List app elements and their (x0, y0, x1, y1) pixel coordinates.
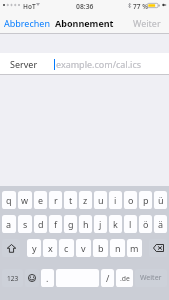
button[interactable]: Server (0, 53, 169, 75)
button[interactable]: Shift (2, 239, 20, 257)
button[interactable]: p (139, 191, 152, 209)
button[interactable]: Weiter (135, 269, 167, 287)
button[interactable]: s (18, 215, 32, 233)
button[interactable]: t (64, 191, 77, 209)
staticText: ü (158, 194, 164, 206)
staticText: j (99, 218, 102, 230)
button[interactable]: g (64, 215, 77, 233)
staticText: Abonnement (55, 17, 114, 29)
button[interactable]: ö (139, 215, 152, 233)
staticText: r (54, 194, 58, 206)
button[interactable]: . (41, 269, 54, 287)
button[interactable]: o (124, 191, 137, 209)
button[interactable]: x (43, 239, 57, 257)
staticText: g (68, 218, 74, 230)
staticText: / (106, 272, 110, 284)
staticText: l (129, 218, 132, 230)
button[interactable]: j (94, 215, 107, 233)
staticText: u (98, 194, 104, 206)
staticText: 123 (7, 274, 19, 283)
staticText: 77 % (133, 2, 148, 11)
staticText: v (81, 242, 86, 254)
button[interactable]: v (76, 239, 91, 257)
button[interactable]: r (49, 191, 62, 209)
staticText: .de (120, 274, 130, 283)
staticText: t (69, 194, 73, 206)
staticText: ö (143, 218, 149, 230)
staticText: a (6, 218, 12, 230)
button[interactable]: w (18, 191, 32, 209)
staticText: n (115, 242, 121, 254)
staticText: m (130, 242, 139, 254)
staticText: h (83, 218, 89, 230)
button[interactable]: y (27, 239, 41, 257)
button[interactable]: k (109, 215, 122, 233)
button[interactable]: q (2, 191, 16, 209)
staticText: b (98, 242, 104, 254)
button[interactable]: i (109, 191, 122, 209)
button[interactable]: b (93, 239, 108, 257)
button[interactable]: ü (154, 191, 167, 209)
button[interactable]: l (124, 215, 137, 233)
button[interactable]: Abbrechen (0, 13, 54, 33)
staticText: z (83, 194, 88, 206)
staticText: d (38, 218, 44, 230)
button[interactable]: e (34, 191, 47, 209)
staticText: p (143, 194, 149, 206)
staticText: k (113, 218, 118, 230)
button[interactable]: d (34, 215, 47, 233)
staticText: . (46, 272, 49, 284)
staticText: example.com/cal.ics (56, 58, 142, 70)
button[interactable]: / (101, 269, 114, 287)
button[interactable]: m (127, 239, 142, 257)
staticText: s (23, 218, 28, 230)
button[interactable]: h (79, 215, 92, 233)
button[interactable]: c (59, 239, 74, 257)
staticText: f (54, 218, 58, 230)
button[interactable]: 123 (2, 269, 23, 287)
staticText: ä (158, 218, 164, 230)
button[interactable]: u (94, 191, 107, 209)
staticText: Weiter (133, 17, 161, 29)
button[interactable]: z (79, 191, 92, 209)
staticText: w (21, 194, 29, 206)
staticText: 08:36 (76, 2, 94, 11)
staticText: Weiter (140, 273, 162, 283)
button[interactable]: Backspace (149, 239, 167, 257)
staticText: Server (10, 58, 38, 70)
button[interactable]: Weiter (125, 13, 169, 33)
staticText: q (6, 194, 12, 206)
button[interactable]: f (49, 215, 62, 233)
staticText: c (64, 242, 69, 254)
button[interactable]: Emoji (25, 269, 39, 287)
button[interactable]: a (2, 215, 16, 233)
button[interactable]: ä (154, 215, 167, 233)
staticText: i (114, 194, 117, 206)
staticText: HoT (23, 2, 36, 11)
staticText: y (32, 242, 37, 254)
button[interactable]: .de (116, 269, 133, 287)
staticText: e (38, 194, 44, 206)
staticText: Abbrechen (4, 17, 50, 29)
staticText: x (48, 242, 53, 254)
button[interactable]: n (110, 239, 125, 257)
staticText: o (128, 194, 134, 206)
